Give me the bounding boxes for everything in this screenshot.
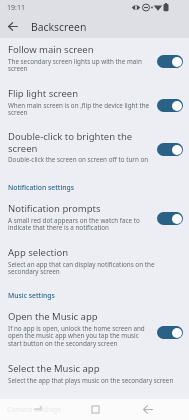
button[interactable]: Follow main screen: [0, 38, 189, 82]
staticText: Double-click the screen on screen off to…: [8, 155, 149, 164]
button[interactable]: Flip light screen: [0, 82, 189, 125]
button[interactable]: App selection: [0, 241, 189, 285]
staticText: Select the Music app: [8, 362, 100, 375]
staticText: The secondary screen lights up with the …: [8, 57, 152, 73]
button[interactable]: Open the Music app: [0, 305, 189, 357]
button[interactable]: Select the Music app: [0, 357, 189, 399]
staticText: Select the app that plays music on the s…: [8, 376, 174, 385]
staticText: Backscreen: [31, 20, 87, 34]
staticText: Flip light screen: [8, 87, 79, 100]
staticText: Notification prompts: [8, 202, 101, 215]
button[interactable]: [157, 99, 183, 112]
staticText: Double-click to brighten the screen: [8, 130, 152, 154]
button[interactable]: Home: [80, 399, 110, 420]
button[interactable]: Camera settings: [0, 399, 68, 420]
staticText: Notification settings: [8, 183, 74, 192]
staticText: If no app is open, unlock the home scree…: [8, 324, 152, 348]
button[interactable]: [157, 55, 183, 68]
button[interactable]: Back: [0, 15, 26, 38]
button[interactable]: [157, 326, 183, 339]
button[interactable]: Double-click to brighten the screen: [0, 125, 189, 172]
staticText: Open the Music app: [8, 310, 98, 323]
staticText: Select an app that can display notificat…: [8, 260, 183, 276]
staticText: App selection: [8, 246, 69, 259]
staticText: 19:11: [7, 3, 25, 13]
staticText: Camera settings: [7, 405, 61, 415]
staticText: A small red dot appears on the watch fac…: [8, 216, 152, 232]
staticText: Follow main screen: [8, 43, 94, 56]
button[interactable]: [157, 143, 183, 156]
staticText: When main screen is on ,flip the device …: [8, 101, 152, 117]
button[interactable]: [157, 212, 183, 225]
button[interactable]: Notification prompts: [0, 197, 189, 241]
staticText: Music settings: [8, 291, 55, 300]
button[interactable]: Back: [133, 399, 163, 420]
